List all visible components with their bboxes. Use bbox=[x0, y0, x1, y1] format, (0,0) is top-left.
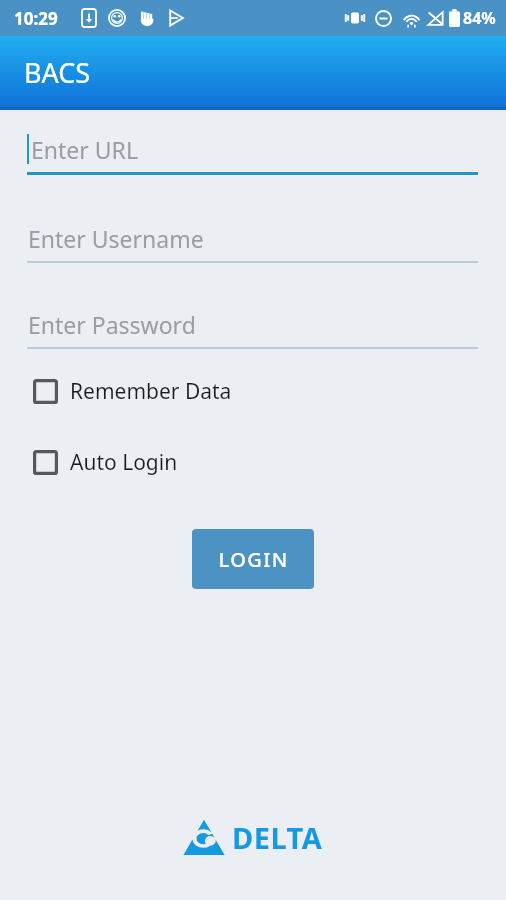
staticText: Enter Username bbox=[28, 223, 204, 254]
staticText: 84% bbox=[463, 7, 496, 29]
button[interactable]: Auto Login bbox=[33, 448, 486, 477]
staticText: BACS bbox=[24, 54, 91, 91]
button[interactable]: Enter URL bbox=[27, 132, 478, 175]
staticText: DELTA bbox=[232, 818, 323, 857]
staticText: 10:29 bbox=[14, 7, 58, 30]
staticText: Auto Login bbox=[70, 448, 178, 477]
staticText: Remember Data bbox=[70, 377, 232, 406]
button[interactable]: LOGIN bbox=[192, 529, 314, 589]
button[interactable]: Enter Password bbox=[27, 307, 478, 349]
button[interactable]: Enter Username bbox=[27, 221, 478, 263]
staticText: Enter Password bbox=[28, 309, 196, 340]
button[interactable]: Remember Data bbox=[33, 377, 486, 406]
staticText: Enter URL bbox=[31, 134, 138, 165]
staticText: LOGIN bbox=[218, 546, 289, 573]
